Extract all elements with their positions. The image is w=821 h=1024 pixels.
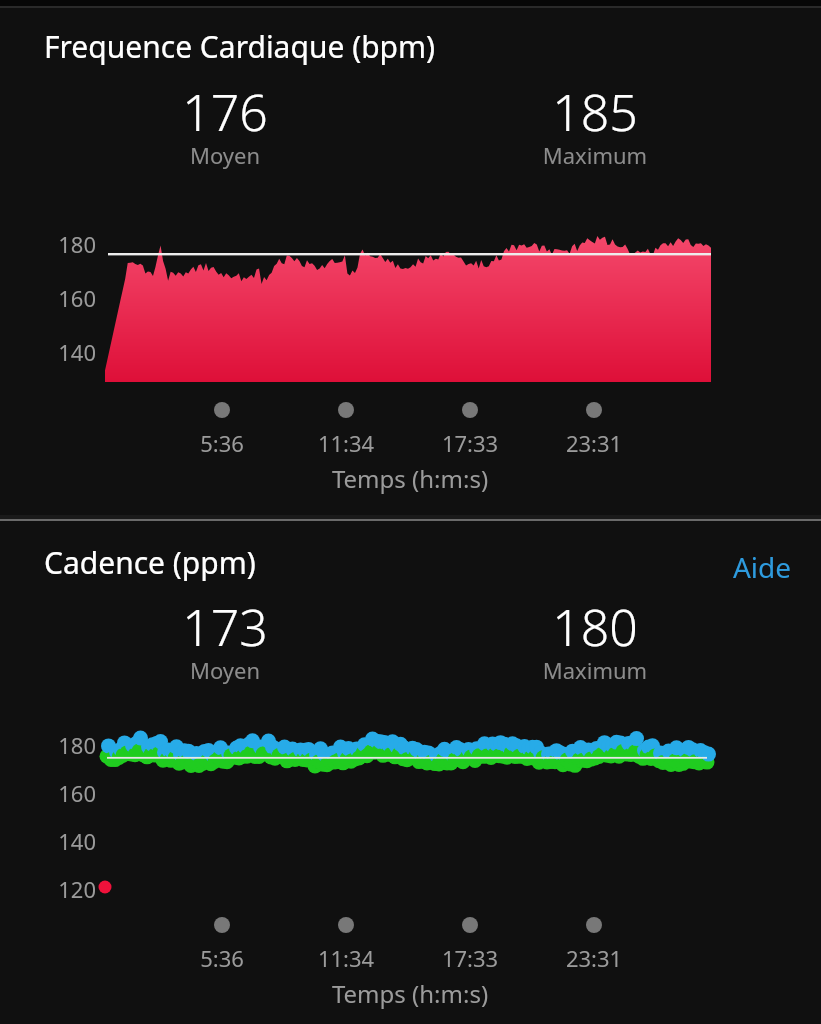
staticText: 180 xyxy=(500,593,690,661)
staticText: 180 xyxy=(44,229,96,259)
staticText: 160 xyxy=(44,283,96,313)
staticText: Frequence Cardiaque (bpm) xyxy=(44,26,436,67)
staticText: Temps (h:m:s) xyxy=(260,462,560,495)
staticText: 23:31 xyxy=(544,428,644,458)
staticText: 17:33 xyxy=(420,428,520,458)
staticText: 185 xyxy=(500,78,690,146)
staticText: Moyen xyxy=(130,140,320,170)
staticText: 140 xyxy=(44,337,96,367)
staticText: 120 xyxy=(44,874,96,904)
staticText: 17:33 xyxy=(420,943,520,973)
staticText: 5:36 xyxy=(172,428,272,458)
staticText: 173 xyxy=(130,593,320,661)
staticText: 23:31 xyxy=(544,943,644,973)
staticText: Maximum xyxy=(500,140,690,170)
staticText: Aide xyxy=(726,548,798,586)
button[interactable]: Aide xyxy=(726,542,800,582)
button[interactable]: Cadence details xyxy=(0,521,821,1024)
staticText: Moyen xyxy=(130,655,320,685)
staticText: Cadence (ppm) xyxy=(44,542,256,583)
staticText: 11:34 xyxy=(296,943,396,973)
staticText: Maximum xyxy=(500,655,690,685)
staticText: 140 xyxy=(44,826,96,856)
staticText: 5:36 xyxy=(172,943,272,973)
button[interactable]: Frequence Cardiaque details xyxy=(0,8,821,515)
staticText: Temps (h:m:s) xyxy=(260,977,560,1010)
staticText: 160 xyxy=(44,778,96,808)
staticText: 176 xyxy=(130,78,320,146)
staticText: 11:34 xyxy=(296,428,396,458)
staticText: 180 xyxy=(44,730,96,760)
